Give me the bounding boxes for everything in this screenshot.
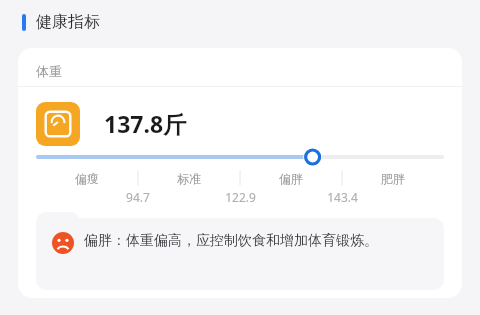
button[interactable] (18, 144, 462, 172)
staticText: 偏胖 (279, 171, 303, 186)
staticText: 健康指标 (36, 12, 100, 32)
staticText: 偏瘦 (75, 171, 99, 186)
other: 警告 (52, 232, 74, 254)
staticText: 标准 (177, 171, 201, 186)
staticText: 137.8斤 (104, 108, 187, 139)
staticText: 肥胖 (381, 171, 405, 186)
button[interactable]: 警告 (36, 212, 444, 290)
button[interactable]: 健康指标 (22, 12, 100, 32)
button[interactable]: 体重秤 (36, 102, 80, 146)
staticText: 143.4 (327, 189, 358, 205)
staticText: 体重 (36, 63, 62, 79)
staticText: 94.7 (126, 189, 150, 205)
staticText: 偏胖：体重偏高，应控制饮食和增加体育锻炼。 (84, 232, 378, 250)
staticText: 122.9 (225, 189, 256, 205)
